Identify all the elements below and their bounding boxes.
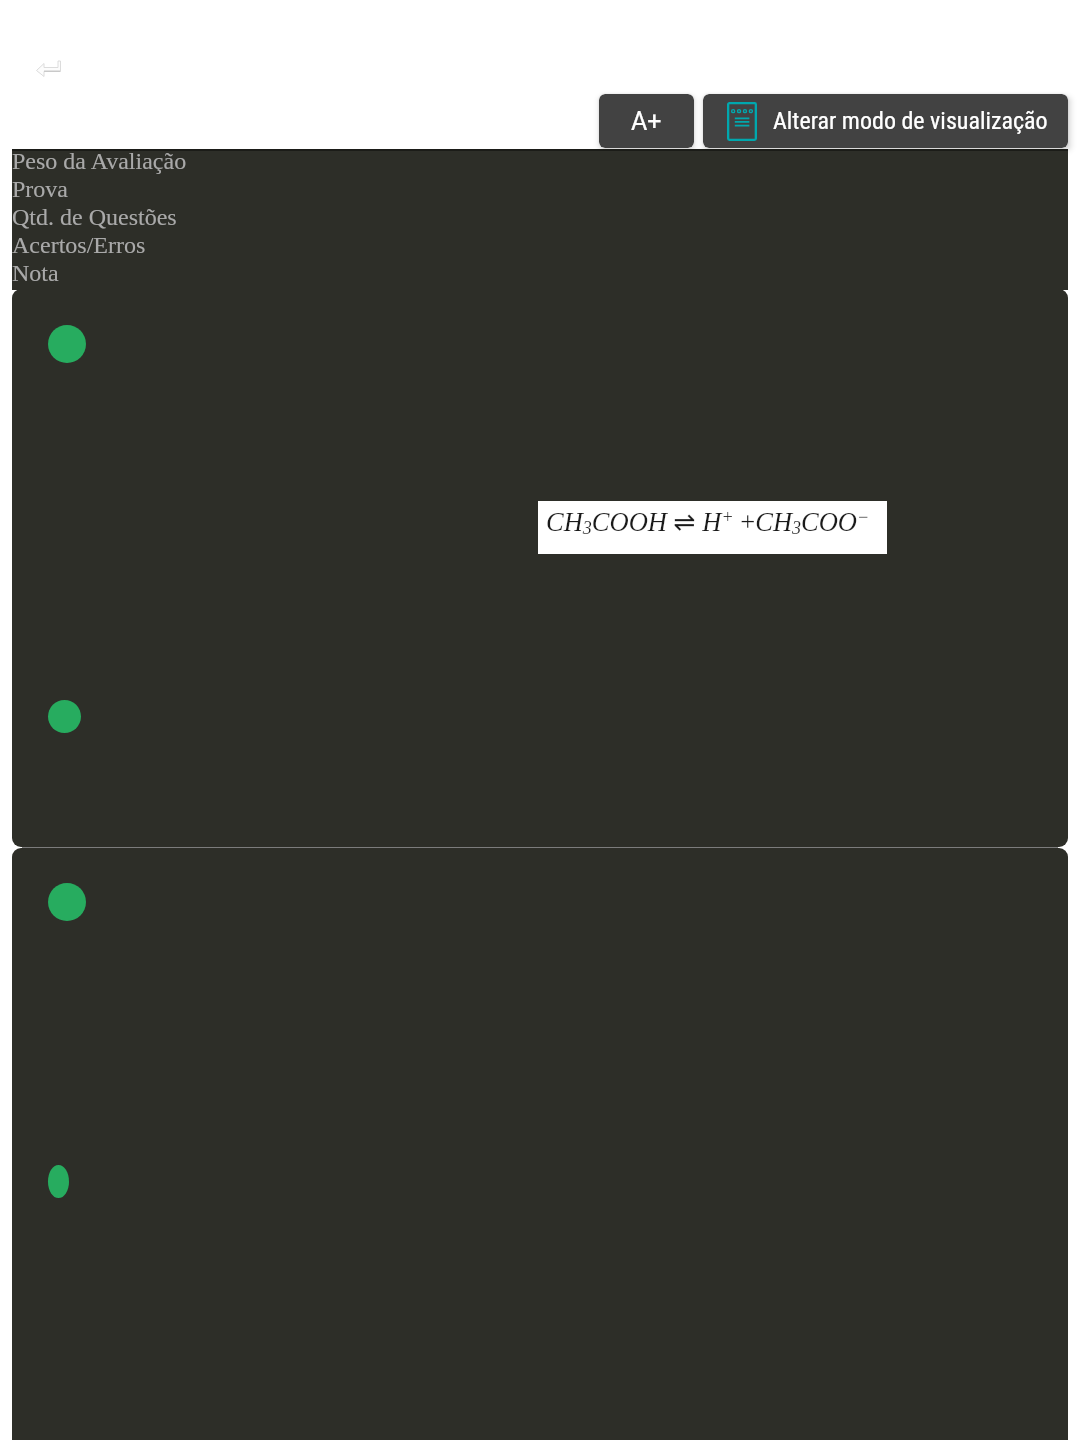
button[interactable]: Alterar modo de visualização [703, 94, 1068, 148]
staticText: A+ [631, 107, 662, 136]
staticText: CH3COOH ⇌ H+ +CH3COO− [546, 506, 870, 538]
staticText: Prova [12, 176, 68, 203]
staticText: Peso da Avaliação [12, 148, 187, 175]
staticText: Nota [12, 260, 59, 287]
staticText: Qtd. de Questões [12, 204, 177, 231]
staticText: Acertos/Erros [12, 232, 146, 259]
button[interactable]: Responder [34, 58, 62, 80]
staticText: Alterar modo de visualização [773, 107, 1048, 135]
button[interactable]: CH3COOH ⇌ H+ +CH3COO− [12, 289, 1068, 847]
button[interactable] [12, 848, 1068, 1440]
button[interactable]: A+ [599, 94, 694, 148]
